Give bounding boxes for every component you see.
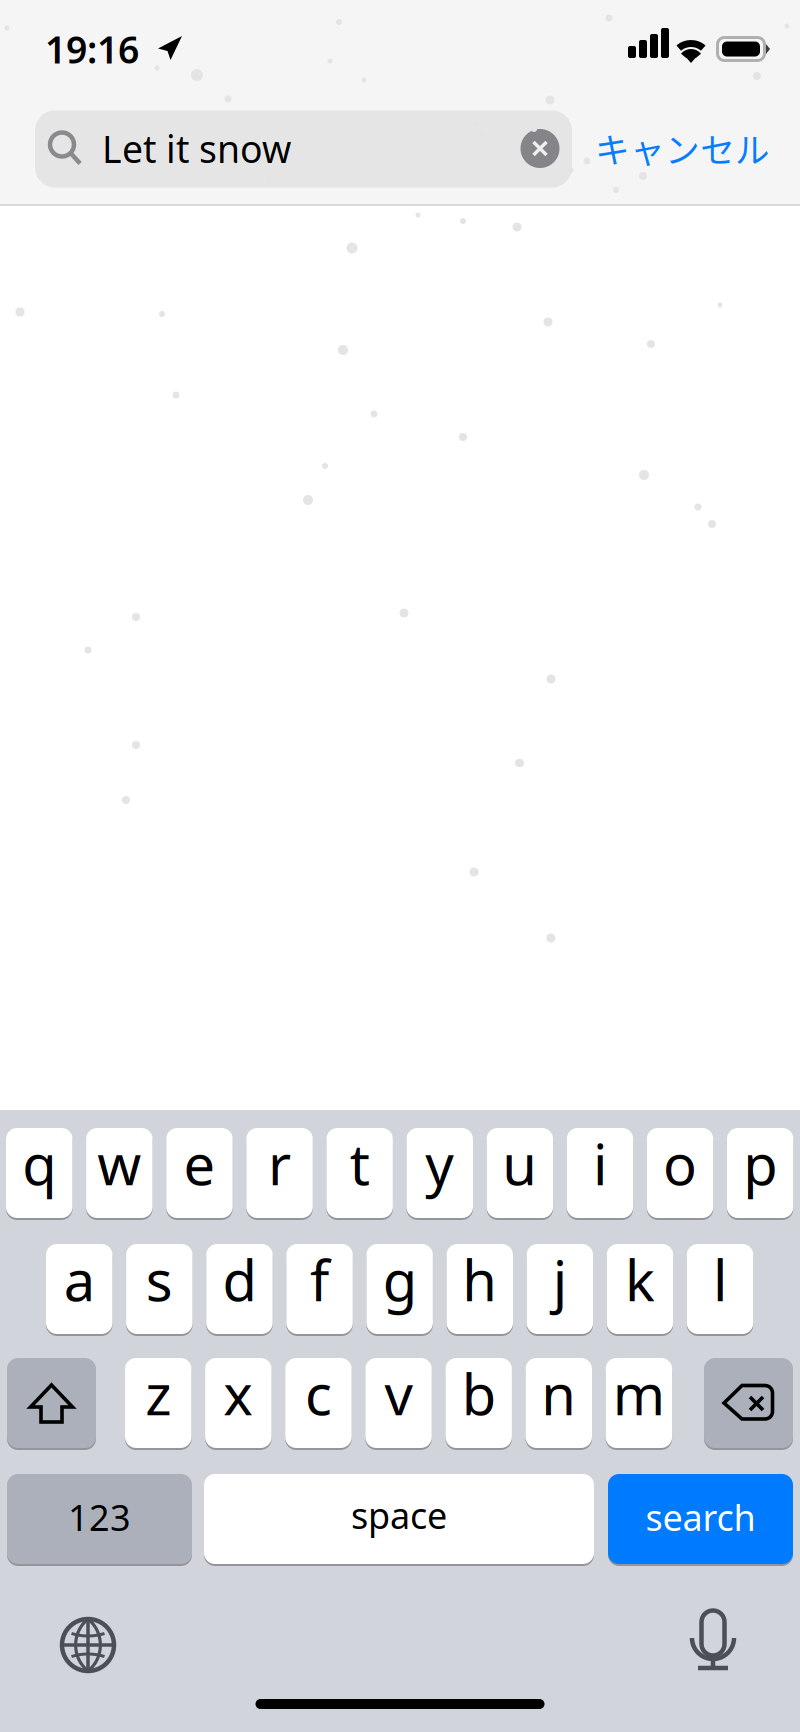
staticText: a: [64, 1242, 95, 1317]
staticText: f: [310, 1242, 329, 1317]
staticText: i: [593, 1126, 607, 1201]
button[interactable]: b: [445, 1358, 512, 1448]
button[interactable]: v: [365, 1358, 432, 1448]
button[interactable]: space: [204, 1474, 594, 1564]
button[interactable]: u: [487, 1128, 553, 1218]
button[interactable]: search: [608, 1474, 793, 1564]
button[interactable]: e: [166, 1128, 233, 1218]
button[interactable]: j: [527, 1244, 593, 1334]
staticText: 19:16: [45, 24, 139, 74]
button[interactable]: k: [607, 1244, 673, 1334]
staticText: n: [541, 1356, 576, 1431]
staticText: o: [663, 1126, 697, 1201]
staticText: search: [645, 1493, 755, 1541]
staticText: l: [713, 1242, 727, 1317]
staticText: z: [145, 1356, 171, 1431]
staticText: d: [222, 1242, 256, 1317]
button[interactable]: d: [206, 1244, 273, 1334]
staticText: b: [462, 1356, 496, 1431]
button[interactable]: Shift: [7, 1358, 96, 1448]
staticText: m: [613, 1356, 665, 1431]
button[interactable]: x: [205, 1358, 272, 1448]
staticText: キャンセル: [595, 123, 770, 173]
staticText: y: [425, 1126, 454, 1201]
staticText: j: [553, 1242, 567, 1317]
staticText: q: [22, 1126, 56, 1201]
staticText: Let it snow: [102, 124, 291, 173]
button[interactable]: q: [6, 1128, 72, 1218]
button[interactable]: s: [126, 1244, 193, 1334]
button[interactable]: m: [606, 1358, 672, 1448]
button[interactable]: c: [285, 1358, 352, 1448]
button[interactable]: r: [246, 1128, 313, 1218]
button[interactable]: g: [366, 1244, 433, 1334]
button[interactable]: Dictate: [681, 1608, 745, 1678]
staticText: p: [743, 1126, 777, 1201]
button[interactable]: Let it snow: [35, 110, 572, 187]
staticText: space: [351, 1491, 447, 1539]
staticText: e: [183, 1126, 215, 1201]
staticText: x: [223, 1356, 253, 1431]
button[interactable]: o: [647, 1128, 713, 1218]
button[interactable]: キャンセル: [595, 112, 767, 184]
button[interactable]: p: [727, 1128, 793, 1218]
button[interactable]: z: [125, 1358, 191, 1448]
button[interactable]: f: [286, 1244, 353, 1334]
button[interactable]: Delete: [704, 1358, 793, 1448]
staticText: t: [350, 1126, 370, 1201]
button[interactable]: w: [86, 1128, 153, 1218]
staticText: g: [383, 1242, 417, 1317]
button[interactable]: Change keyboard: [56, 1613, 120, 1677]
staticText: 123: [68, 1493, 131, 1541]
staticText: r: [268, 1126, 291, 1201]
staticText: s: [146, 1242, 173, 1317]
button[interactable]: i: [567, 1128, 633, 1218]
staticText: v: [384, 1356, 412, 1431]
button[interactable]: h: [446, 1244, 513, 1334]
staticText: h: [462, 1242, 497, 1317]
button[interactable]: 123: [7, 1474, 192, 1564]
button[interactable]: t: [326, 1128, 393, 1218]
staticText: w: [97, 1126, 141, 1201]
staticText: u: [502, 1126, 537, 1201]
staticText: c: [305, 1356, 332, 1431]
button[interactable]: l: [687, 1244, 753, 1334]
button[interactable]: y: [406, 1128, 473, 1218]
button[interactable]: a: [46, 1244, 112, 1334]
button[interactable]: n: [525, 1358, 592, 1448]
staticText: k: [625, 1242, 655, 1317]
